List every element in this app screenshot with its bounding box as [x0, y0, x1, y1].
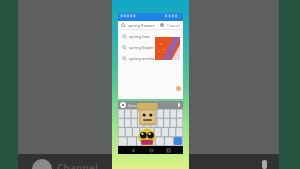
button[interactable]: spring flowers	[118, 21, 183, 29]
staticText: spring flower crown	[129, 45, 167, 50]
staticText: Search	[128, 103, 140, 108]
button[interactable]: Recents	[165, 147, 171, 153]
button[interactable]	[118, 109, 183, 146]
staticText: Cancel	[167, 23, 180, 28]
button[interactable]: Search	[174, 137, 182, 145]
button[interactable]: Back	[130, 147, 136, 153]
staticText: spring flowers	[128, 23, 155, 28]
staticText: spring aesthe	[129, 56, 155, 61]
button[interactable]: Home	[148, 147, 154, 153]
button[interactable]: Channel	[57, 161, 98, 169]
button[interactable]: spring fans	[118, 31, 183, 42]
staticText: spring fans	[129, 34, 151, 39]
button[interactable]: spring aesthe	[118, 53, 183, 64]
button[interactable]: spring flower crown	[118, 42, 183, 53]
button[interactable]: Channel avatar	[32, 159, 52, 169]
button[interactable]: Voice search	[178, 103, 180, 107]
button[interactable]: Search	[118, 101, 183, 109]
button[interactable]: More options	[262, 160, 267, 169]
